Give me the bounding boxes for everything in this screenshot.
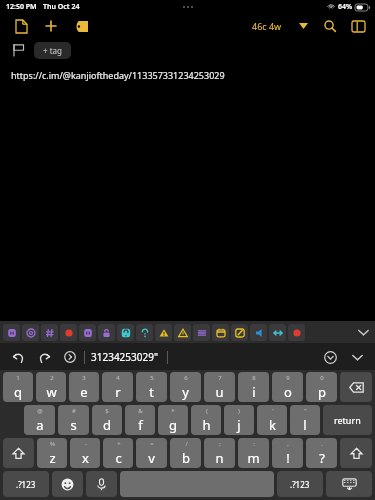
button[interactable]: @ [24, 405, 55, 435]
staticText: 3 [82, 374, 86, 382]
button[interactable]: Shortcut 11 [193, 324, 210, 341]
button[interactable]: 31234253029" [89, 350, 161, 364]
staticText: h [202, 416, 211, 434]
staticText: $ [105, 407, 109, 415]
staticText: w [46, 383, 57, 401]
staticText: p [318, 383, 326, 401]
button[interactable]: Shortcut 9 [155, 324, 172, 341]
button[interactable]: 7 [204, 372, 235, 402]
button[interactable]: ) [224, 405, 254, 435]
button[interactable]: : [238, 438, 269, 468]
staticText: / [185, 440, 188, 448]
button[interactable]: 0 [306, 372, 337, 402]
button[interactable]: Redo [34, 347, 54, 367]
button[interactable]: Tag [68, 13, 94, 39]
button[interactable]: 3 [69, 372, 99, 402]
button[interactable]: Dropdown [293, 16, 313, 36]
button[interactable]: . [306, 438, 337, 468]
button[interactable]: Shortcut 5 [79, 324, 96, 341]
button[interactable]: Search [319, 15, 341, 37]
button[interactable]: " [290, 405, 320, 435]
button[interactable]: Dictation [86, 471, 117, 497]
button[interactable]: / [170, 438, 201, 468]
button[interactable]: ; [204, 438, 235, 468]
button[interactable]: * [158, 405, 188, 435]
button[interactable]: Flag [8, 40, 28, 60]
button[interactable]: .?123 [277, 471, 323, 497]
button[interactable]: Shortcut 6 [98, 324, 115, 341]
staticText: % [50, 440, 55, 448]
button[interactable]: Shortcut 12 [212, 324, 229, 341]
button[interactable]: .?123 [3, 471, 49, 497]
button[interactable]: % [37, 438, 67, 468]
staticText: ( [206, 407, 208, 415]
button[interactable]: Shortcut 13 [231, 324, 248, 341]
button[interactable]: Undo [8, 347, 28, 367]
button[interactable]: 5 [136, 372, 167, 402]
button[interactable]: # [58, 405, 89, 435]
staticText: n [215, 449, 224, 467]
button[interactable]: 4 [102, 372, 133, 402]
button[interactable]: Shift [340, 438, 372, 468]
staticText: 6 [184, 374, 188, 382]
button[interactable]: Shortcut 1 [3, 324, 20, 341]
staticText: .?123 [290, 479, 310, 490]
button[interactable]: 2 [36, 372, 66, 402]
staticText: l [303, 416, 307, 434]
staticText: 0 [320, 374, 324, 382]
button[interactable]: Hide keyboard [347, 347, 367, 367]
button[interactable]: ( [191, 405, 221, 435]
button[interactable]: Shortcut 16 [288, 324, 305, 341]
button[interactable]: 1 [3, 372, 33, 402]
staticText: q [14, 383, 22, 401]
staticText: 4 [116, 374, 120, 382]
staticText: & [138, 407, 143, 415]
button[interactable]: Shortcut 4 [60, 324, 77, 341]
button[interactable]: + tag [34, 42, 71, 59]
button[interactable]: Sidebar [347, 15, 369, 37]
button[interactable]: Shortcut 3 [41, 324, 58, 341]
button[interactable]: Shortcut 2 [22, 324, 39, 341]
staticText: ! [286, 449, 290, 467]
button[interactable]: & [125, 405, 155, 435]
staticText: . [321, 440, 323, 448]
staticText: + tag [43, 45, 62, 56]
staticText: ; [219, 440, 221, 448]
button[interactable]: ' [257, 405, 287, 435]
button[interactable]: = [136, 438, 167, 468]
button[interactable]: Shortcut 10 [174, 324, 191, 341]
button[interactable]: 8 [238, 372, 269, 402]
button[interactable]: Dismiss keyboard [326, 471, 372, 497]
button[interactable]: Shift [3, 438, 34, 468]
button[interactable]: Emoji [52, 471, 83, 497]
button[interactable]: Next [60, 347, 80, 367]
button[interactable]: Shortcut 8 [136, 324, 153, 341]
button[interactable]: New note [8, 13, 34, 39]
button[interactable]: 46c 4w [249, 18, 285, 34]
staticText: k [269, 416, 276, 434]
staticText: s [70, 416, 77, 434]
button[interactable]: Shortcut 14 [250, 324, 267, 341]
button[interactable]: + [103, 438, 133, 468]
staticText: 1 [16, 374, 20, 382]
button[interactable]: Shortcut 7 [117, 324, 134, 341]
button[interactable]: Predictions [320, 347, 340, 367]
staticText: https://c.im/@kanjioftheday/113357331234… [11, 69, 225, 81]
button[interactable]: Collapse [355, 324, 371, 340]
staticText: i [252, 383, 256, 401]
button[interactable]: Add [38, 13, 64, 39]
button[interactable]: Space [120, 471, 274, 497]
button[interactable]: Backspace [340, 372, 372, 402]
button[interactable]: - [70, 438, 100, 468]
button[interactable]: , [272, 438, 303, 468]
staticText: x [82, 449, 89, 467]
staticText: ) [238, 407, 240, 415]
staticText: j [237, 416, 241, 434]
button[interactable]: 9 [272, 372, 303, 402]
button[interactable]: $ [92, 405, 122, 435]
button[interactable]: 6 [170, 372, 201, 402]
staticText: g [169, 416, 177, 434]
staticText: return [334, 414, 361, 426]
button[interactable]: Shortcut 15 [269, 324, 286, 341]
button[interactable]: return [323, 405, 372, 435]
